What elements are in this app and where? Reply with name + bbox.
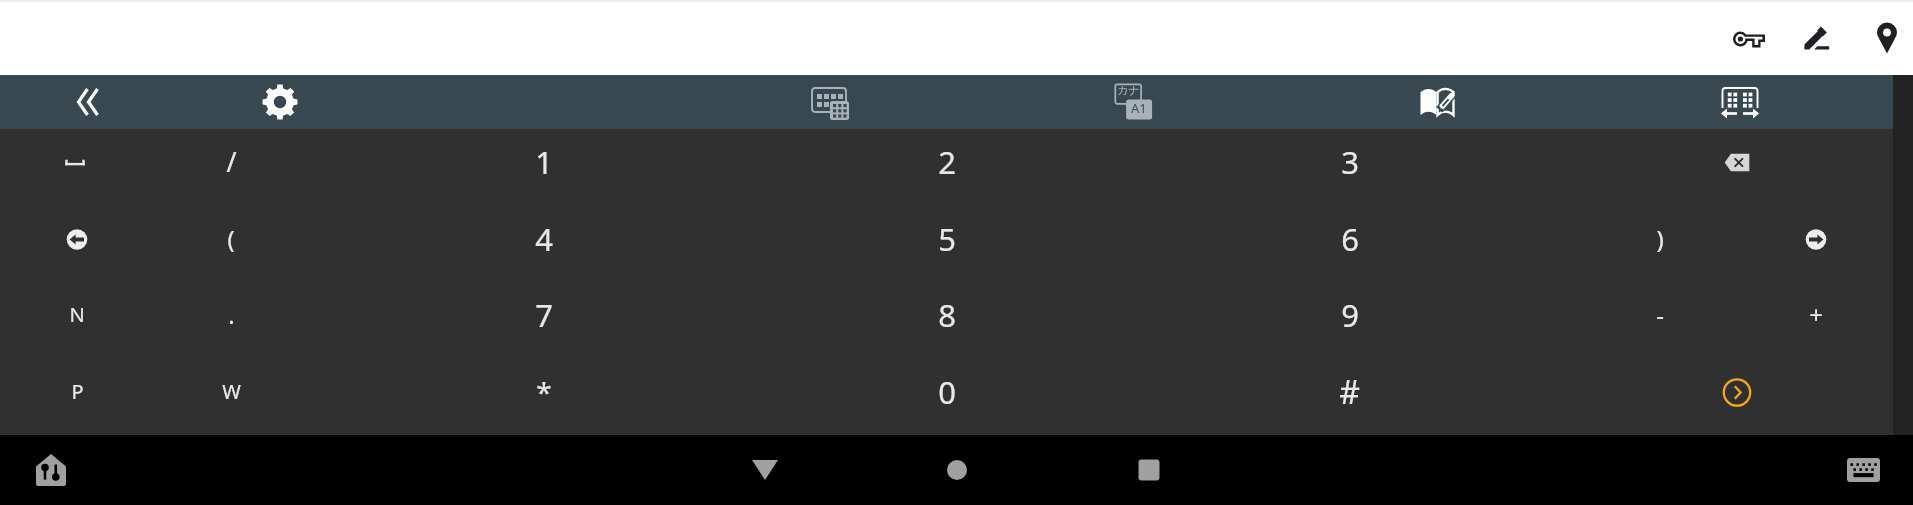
- staticText: ): [1656, 222, 1664, 255]
- staticText: 1: [535, 141, 553, 183]
- staticText: P: [71, 378, 84, 405]
- button[interactable]: Back: [730, 435, 800, 505]
- button[interactable]: 0: [745, 359, 1148, 436]
- button[interactable]: Move left: [0, 206, 154, 283]
- button[interactable]: Keyboard: [1834, 441, 1892, 499]
- staticText: 8: [938, 294, 956, 336]
- staticText: カナ: [1117, 83, 1140, 97]
- button[interactable]: N: [0, 282, 154, 359]
- staticText: 2: [938, 141, 956, 183]
- staticText: .: [228, 298, 235, 331]
- button[interactable]: 9: [1148, 282, 1551, 359]
- staticText: 3: [1341, 141, 1359, 183]
- button[interactable]: Collapse: [61, 75, 115, 129]
- staticText: 9: [1341, 294, 1359, 336]
- button[interactable]: #: [1148, 359, 1551, 436]
- button[interactable]: Home: [922, 435, 992, 505]
- button[interactable]: Edit: [1789, 11, 1845, 67]
- button[interactable]: W: [154, 359, 308, 436]
- button[interactable]: Space: [0, 129, 154, 206]
- button[interactable]: P: [0, 359, 154, 436]
- staticText: 7: [535, 294, 553, 336]
- button[interactable]: Home controls: [22, 441, 80, 499]
- button[interactable]: +: [1739, 282, 1893, 359]
- staticText: +: [1809, 298, 1823, 331]
- staticText: 0: [938, 371, 956, 413]
- button[interactable]: *: [342, 359, 745, 436]
- button[interactable]: Enter: [1581, 359, 1892, 436]
- button[interactable]: .: [154, 282, 308, 359]
- button[interactable]: Location: [1859, 11, 1913, 67]
- staticText: N: [69, 301, 85, 328]
- staticText: (: [227, 222, 235, 255]
- staticText: #: [1339, 370, 1360, 414]
- button[interactable]: 7: [342, 282, 745, 359]
- button[interactable]: Split keyboard: [1713, 75, 1767, 129]
- button[interactable]: 8: [745, 282, 1148, 359]
- button[interactable]: 4: [342, 206, 745, 283]
- button[interactable]: (: [154, 206, 308, 283]
- staticText: 6: [1341, 218, 1359, 260]
- staticText: W: [222, 378, 241, 405]
- staticText: *: [536, 373, 552, 411]
- button[interactable]: 3: [1148, 129, 1551, 206]
- button[interactable]: Dictionary: [1410, 75, 1464, 129]
- button[interactable]: 2: [745, 129, 1148, 206]
- staticText: 4: [535, 218, 553, 260]
- button[interactable]: 1: [342, 129, 745, 206]
- staticText: A1: [1131, 99, 1147, 117]
- button[interactable]: 6: [1148, 206, 1551, 283]
- button[interactable]: -: [1581, 282, 1738, 359]
- button[interactable]: Switch keyboard: [802, 75, 856, 129]
- button[interactable]: Settings: [253, 75, 307, 129]
- button[interactable]: Password: [1721, 11, 1777, 67]
- button[interactable]: Backspace: [1581, 129, 1892, 206]
- button[interactable]: Move right: [1739, 206, 1893, 283]
- button[interactable]: 5: [745, 206, 1148, 283]
- button[interactable]: Input mode: [1106, 75, 1160, 129]
- staticText: -: [1656, 298, 1664, 331]
- button[interactable]: Recents: [1114, 435, 1184, 505]
- staticText: 5: [938, 218, 956, 260]
- button[interactable]: ): [1581, 206, 1738, 283]
- staticText: /: [226, 143, 237, 180]
- button[interactable]: /: [154, 129, 308, 206]
